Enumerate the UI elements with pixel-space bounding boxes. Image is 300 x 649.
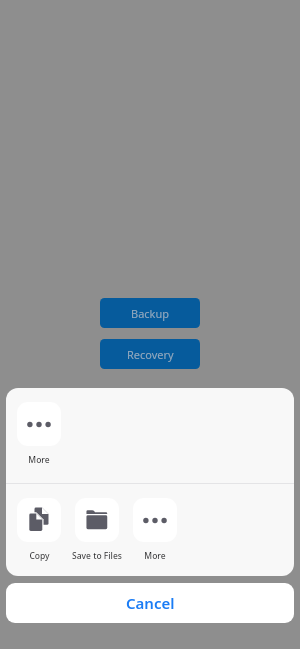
- button[interactable]: Cancel: [6, 583, 294, 623]
- staticText: More: [28, 454, 50, 466]
- staticText: Backup: [131, 306, 170, 321]
- button[interactable]: Recovery: [100, 339, 200, 369]
- staticText: Save to Files: [72, 550, 122, 562]
- button[interactable]: Save to Files: [75, 498, 133, 562]
- button[interactable]: Backup: [100, 298, 200, 328]
- staticText: Cancel: [126, 593, 175, 613]
- button[interactable]: Copy: [17, 498, 75, 562]
- staticText: More: [144, 550, 166, 562]
- button[interactable]: More: [133, 498, 177, 562]
- button[interactable]: More: [17, 402, 61, 466]
- staticText: Recovery: [127, 347, 174, 362]
- staticText: Copy: [29, 550, 50, 562]
